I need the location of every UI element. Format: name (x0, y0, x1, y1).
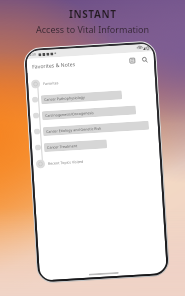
staticText: Carcinogenesis/Oncogenesis (45, 110, 94, 118)
button[interactable]: Carcinogenesis/Oncogenesis (30, 100, 157, 124)
staticText: Access to Vital Information (36, 23, 150, 35)
staticText: Recent Topics Visited (48, 159, 84, 166)
staticText: Cancer Etiology and Genetic Risk (46, 126, 102, 134)
staticText: Favorites (43, 80, 59, 86)
staticText: 3:30 (29, 52, 36, 57)
staticText: Favorites & Notes (32, 60, 75, 70)
staticText: INSTANT (69, 7, 117, 21)
button[interactable]: Recent Topics Visited (32, 148, 160, 172)
button[interactable]: Cancer Pathophysiology (29, 84, 156, 108)
button[interactable]: Cancer Etiology and Genetic Risk (31, 116, 158, 140)
button[interactable]: Notes (128, 55, 137, 65)
button[interactable]: Cancer Treatment (31, 132, 159, 156)
button[interactable]: Favorites (28, 68, 155, 92)
staticText: Cancer Treatment (47, 143, 78, 150)
staticText: Cancer Pathophysiology (44, 95, 85, 102)
button[interactable]: Search (140, 55, 149, 64)
